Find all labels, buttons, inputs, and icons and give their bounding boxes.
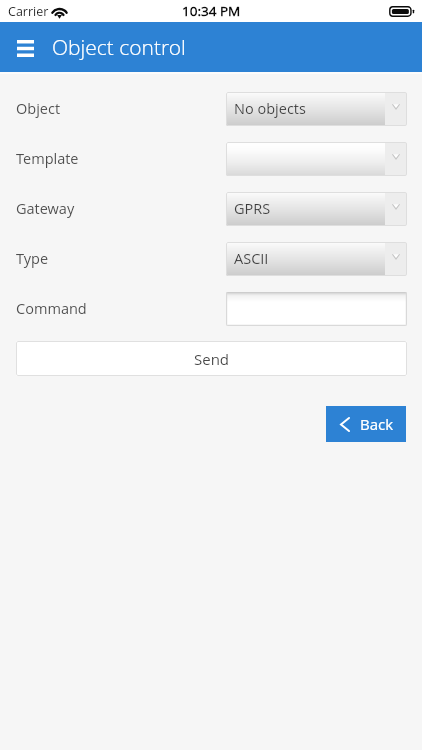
button[interactable]: Menu <box>5 27 45 67</box>
button[interactable]: No objects <box>226 92 407 126</box>
staticText: Carrier <box>8 3 49 20</box>
button[interactable]: Command input <box>226 292 407 326</box>
staticText: Back <box>360 414 394 434</box>
staticText: Type <box>16 249 49 269</box>
button[interactable]: Send <box>16 341 407 376</box>
staticText: GPRS <box>234 199 271 219</box>
button[interactable]: ASCII <box>226 242 407 276</box>
staticText: No objects <box>234 99 306 119</box>
staticText: ASCII <box>234 249 269 269</box>
staticText: Template <box>16 149 79 169</box>
staticText: 10:34 PM <box>182 2 241 20</box>
button[interactable]: Select option <box>226 142 407 176</box>
staticText: Object <box>16 99 61 119</box>
button[interactable]: GPRS <box>226 192 407 226</box>
staticText: Gateway <box>16 199 75 219</box>
staticText: Object control <box>52 33 186 62</box>
staticText: Command <box>16 299 87 319</box>
staticText: Send <box>194 349 230 369</box>
button[interactable]: Back <box>326 406 406 442</box>
